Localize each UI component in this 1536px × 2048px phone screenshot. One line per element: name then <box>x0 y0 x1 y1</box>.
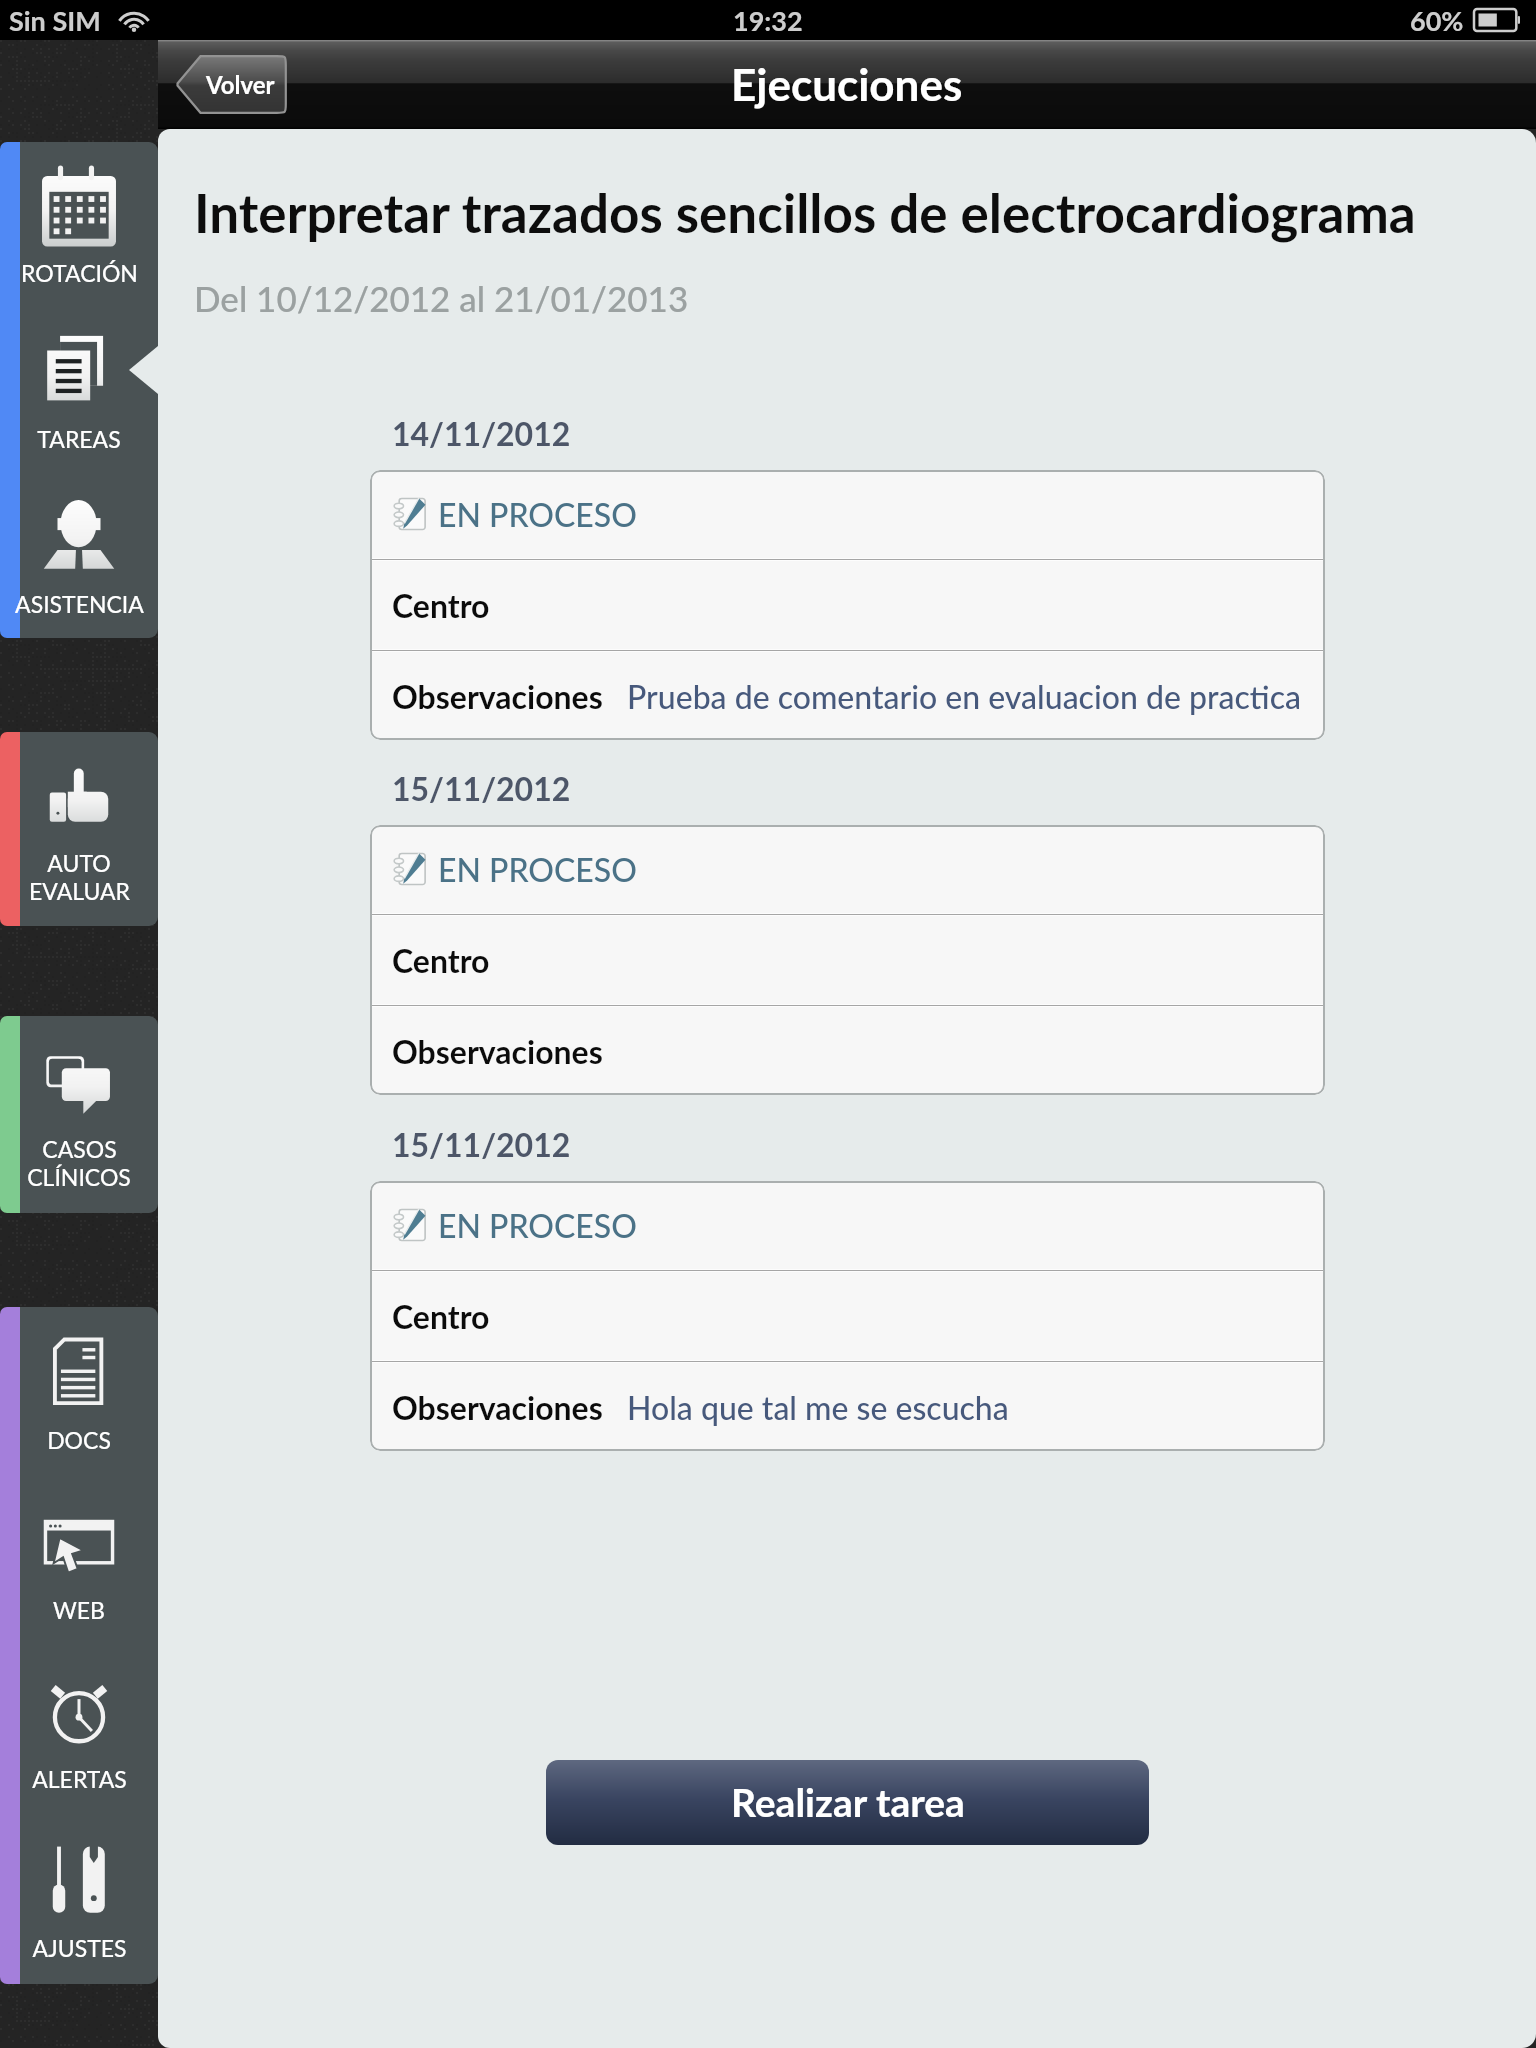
staticText: EN PROCESO <box>438 495 637 533</box>
staticText: Del 10/12/2012 al 21/01/2013 <box>194 277 689 319</box>
button[interactable]: Centro <box>370 1272 1325 1360</box>
staticText: Observaciones <box>392 1388 603 1426</box>
button[interactable]: Observaciones <box>370 1007 1325 1095</box>
staticText: 15/11/2012 <box>392 1125 571 1163</box>
button[interactable]: Observaciones <box>370 652 1325 740</box>
staticText: Observaciones <box>392 1032 603 1070</box>
staticText: EVALUAR <box>29 877 130 905</box>
staticText: TAREAS <box>37 425 121 453</box>
staticText: ROTACIÓN <box>21 259 138 287</box>
staticText: CLÍNICOS <box>27 1163 131 1191</box>
button[interactable]: EN PROCESO <box>370 470 1325 558</box>
button[interactable]: Realizar tarea <box>546 1760 1149 1845</box>
staticText: EN PROCESO <box>438 850 637 888</box>
staticText: Centro <box>392 941 490 979</box>
staticText: Sin SIM <box>9 4 101 36</box>
staticText: Prueba de comentario en evaluacion de pr… <box>627 677 1301 715</box>
staticText: 60% <box>1410 4 1464 36</box>
staticText: Centro <box>392 1297 490 1335</box>
staticText: Ejecuciones <box>731 58 963 111</box>
staticText: WEB <box>53 1596 105 1624</box>
button[interactable]: Centro <box>370 916 1325 1004</box>
button[interactable]: TAREAS <box>0 308 158 473</box>
staticText: 14/11/2012 <box>392 414 571 452</box>
button[interactable]: DOCS <box>0 1307 158 1477</box>
staticText: AUTO <box>47 849 111 877</box>
button[interactable]: EN PROCESO <box>370 1181 1325 1269</box>
staticText: Realizar tarea <box>731 1779 965 1826</box>
staticText: DOCS <box>47 1426 111 1454</box>
staticText: 15/11/2012 <box>392 769 571 807</box>
button[interactable]: ALERTAS <box>0 1646 158 1815</box>
staticText: CASOS <box>42 1135 117 1163</box>
staticText: ALERTAS <box>32 1765 127 1793</box>
button[interactable]: EN PROCESO <box>370 825 1325 913</box>
button[interactable]: AUTO EVALUAR <box>0 732 158 926</box>
staticText: Hola que tal me se escucha <box>627 1388 1009 1426</box>
staticText: Interpretar trazados sencillos de electr… <box>194 181 1416 245</box>
button[interactable]: Volver <box>176 55 287 114</box>
staticText: EN PROCESO <box>438 1206 637 1244</box>
button[interactable]: WEB <box>0 1477 158 1646</box>
button[interactable]: Observaciones <box>370 1363 1325 1451</box>
button[interactable]: AJUSTES <box>0 1815 158 1984</box>
button[interactable]: ASISTENCIA <box>0 473 158 638</box>
staticText: 19:32 <box>733 4 803 36</box>
staticText: Volver <box>206 70 275 99</box>
staticText: Centro <box>392 586 490 624</box>
staticText: ASISTENCIA <box>15 590 144 618</box>
button[interactable]: Centro <box>370 561 1325 649</box>
button[interactable]: ROTACIÓN <box>0 142 158 308</box>
staticText: Observaciones <box>392 677 603 715</box>
button[interactable]: CASOS CLÍNICOS <box>0 1016 158 1213</box>
staticText: AJUSTES <box>32 1934 127 1962</box>
